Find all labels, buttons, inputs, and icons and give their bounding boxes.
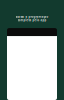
staticText: completa pelo app	[17, 18, 46, 22]
staticText: Acesse a programação	[15, 15, 48, 18]
